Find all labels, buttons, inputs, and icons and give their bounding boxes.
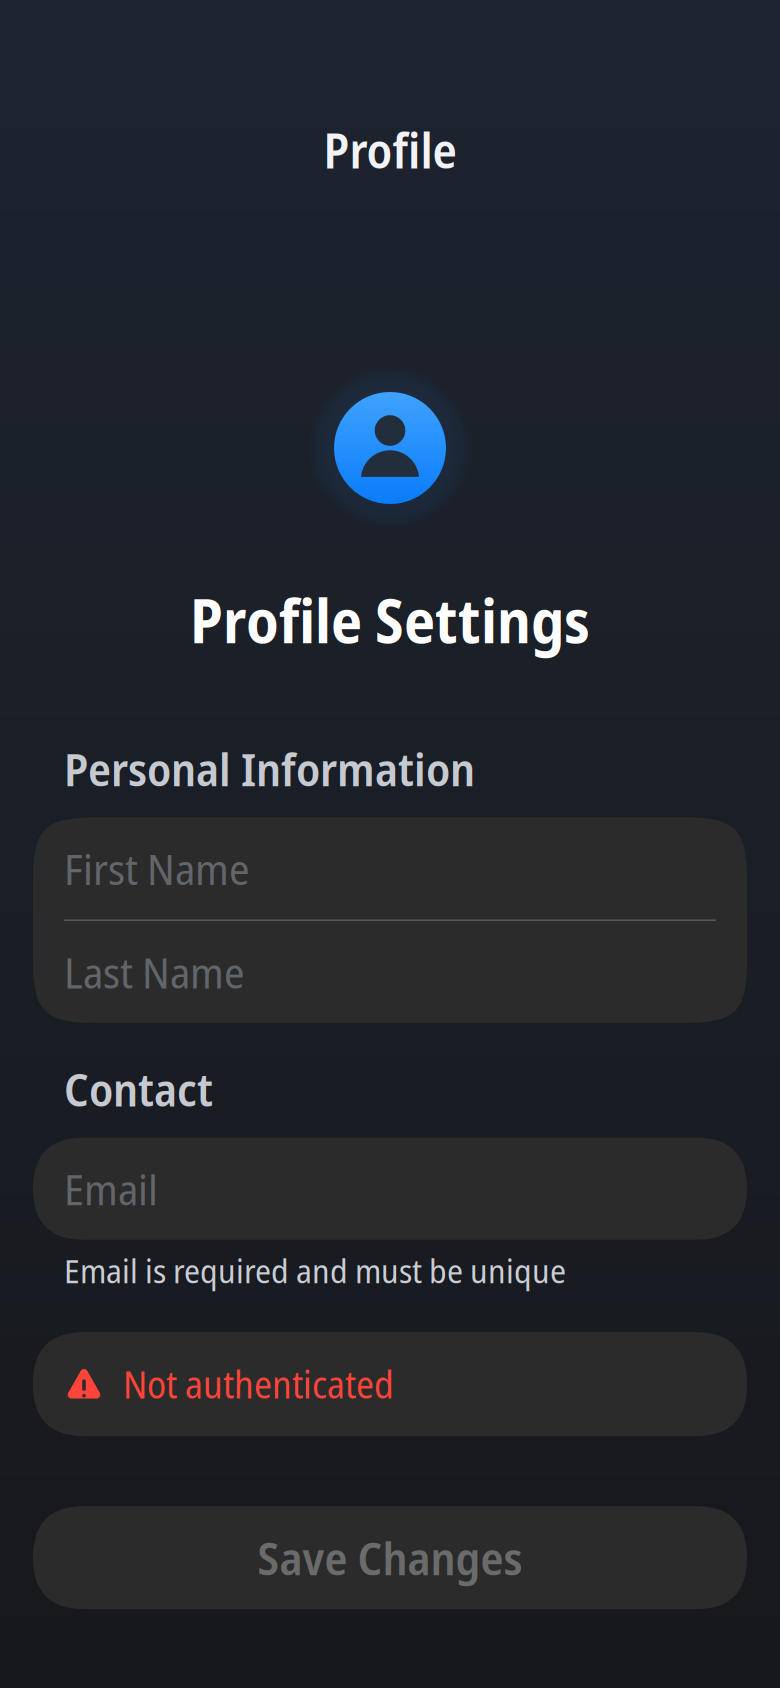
staticText: Profile Settings: [190, 579, 590, 661]
staticText: Email: [64, 1160, 158, 1218]
staticText: Contact: [64, 1058, 213, 1120]
staticText: Not authenticated: [123, 1359, 394, 1409]
staticText: Profile: [323, 117, 456, 183]
staticText: Last Name: [64, 943, 245, 1001]
staticText: Email is required and must be unique: [64, 1248, 566, 1293]
staticText: Personal Information: [64, 738, 475, 799]
button[interactable]: Save Changes: [33, 1506, 747, 1609]
staticText: First Name: [64, 839, 250, 897]
staticText: Save Changes: [257, 1527, 522, 1588]
